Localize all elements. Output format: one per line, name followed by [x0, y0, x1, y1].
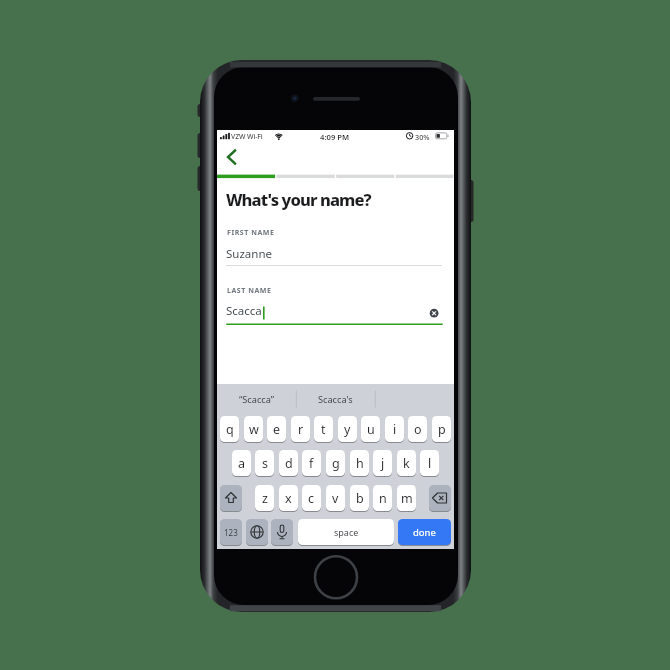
button[interactable]: k: [397, 450, 416, 476]
button[interactable]: o: [408, 416, 427, 442]
staticText: o: [414, 421, 422, 438]
button[interactable]: r: [291, 416, 310, 442]
staticText: k: [403, 455, 410, 472]
button[interactable]: g: [326, 450, 345, 476]
button[interactable]: [226, 296, 426, 325]
button[interactable]: t: [314, 416, 333, 442]
staticText: VZW Wi-Fi: [231, 132, 263, 141]
button[interactable]: b: [350, 485, 369, 511]
button[interactable]: [428, 307, 440, 319]
staticText: FIRST NAME: [227, 228, 275, 238]
button[interactable]: m: [397, 485, 416, 511]
button[interactable]: c: [302, 485, 321, 511]
button[interactable]: f: [302, 450, 321, 476]
button[interactable]: n: [373, 485, 392, 511]
button[interactable]: [271, 519, 293, 545]
button[interactable]: j: [373, 450, 392, 476]
button[interactable]: space: [298, 519, 394, 545]
button[interactable]: “Scacca”: [217, 385, 296, 413]
button[interactable]: l: [420, 450, 439, 476]
staticText: u: [367, 421, 375, 438]
staticText: e: [273, 421, 281, 438]
button[interactable]: h: [350, 450, 369, 476]
staticText: n: [379, 490, 387, 507]
staticText: g: [332, 455, 340, 472]
staticText: Suzanne: [226, 246, 272, 262]
button[interactable]: [429, 485, 451, 511]
staticText: s: [262, 455, 268, 472]
staticText: 123: [224, 527, 238, 538]
button[interactable]: x: [279, 485, 298, 511]
button[interactable]: z: [255, 485, 274, 511]
staticText: t: [321, 421, 326, 438]
staticText: LAST NAME: [227, 286, 272, 296]
button[interactable]: e: [267, 416, 286, 442]
staticText: 30%: [415, 132, 430, 142]
button[interactable]: [226, 238, 443, 267]
button[interactable]: Scacca's: [296, 385, 375, 413]
staticText: x: [285, 490, 292, 507]
staticText: c: [308, 490, 315, 507]
staticText: Scacca's: [318, 393, 353, 406]
staticText: f: [309, 455, 314, 472]
staticText: m: [401, 490, 413, 507]
staticText: What's your name?: [226, 188, 371, 210]
button[interactable]: q: [220, 416, 239, 442]
button[interactable]: p: [432, 416, 451, 442]
button[interactable]: done: [398, 519, 451, 545]
button[interactable]: s: [255, 450, 274, 476]
button[interactable]: y: [338, 416, 357, 442]
staticText: d: [285, 455, 293, 472]
staticText: w: [249, 421, 259, 438]
staticText: r: [298, 421, 304, 438]
staticText: space: [334, 526, 359, 538]
button[interactable]: [223, 146, 241, 168]
staticText: l: [428, 455, 432, 472]
button[interactable]: u: [361, 416, 380, 442]
button[interactable]: w: [244, 416, 263, 442]
button[interactable]: a: [232, 450, 251, 476]
staticText: p: [438, 421, 446, 438]
staticText: h: [356, 455, 364, 472]
staticText: y: [344, 421, 351, 438]
button[interactable]: 123: [220, 519, 242, 545]
staticText: v: [332, 490, 339, 507]
staticText: 4:09 PM: [320, 132, 350, 142]
button[interactable]: d: [279, 450, 298, 476]
staticText: Scacca: [226, 303, 262, 319]
button[interactable]: [246, 519, 268, 545]
button[interactable]: [220, 485, 242, 511]
staticText: b: [356, 490, 364, 507]
staticText: done: [413, 526, 436, 539]
button[interactable]: v: [326, 485, 345, 511]
staticText: j: [381, 455, 385, 472]
staticText: z: [262, 490, 268, 507]
staticText: q: [226, 421, 234, 438]
staticText: a: [238, 455, 246, 472]
staticText: i: [393, 421, 397, 438]
staticText: “Scacca”: [239, 393, 275, 406]
button[interactable]: i: [385, 416, 404, 442]
